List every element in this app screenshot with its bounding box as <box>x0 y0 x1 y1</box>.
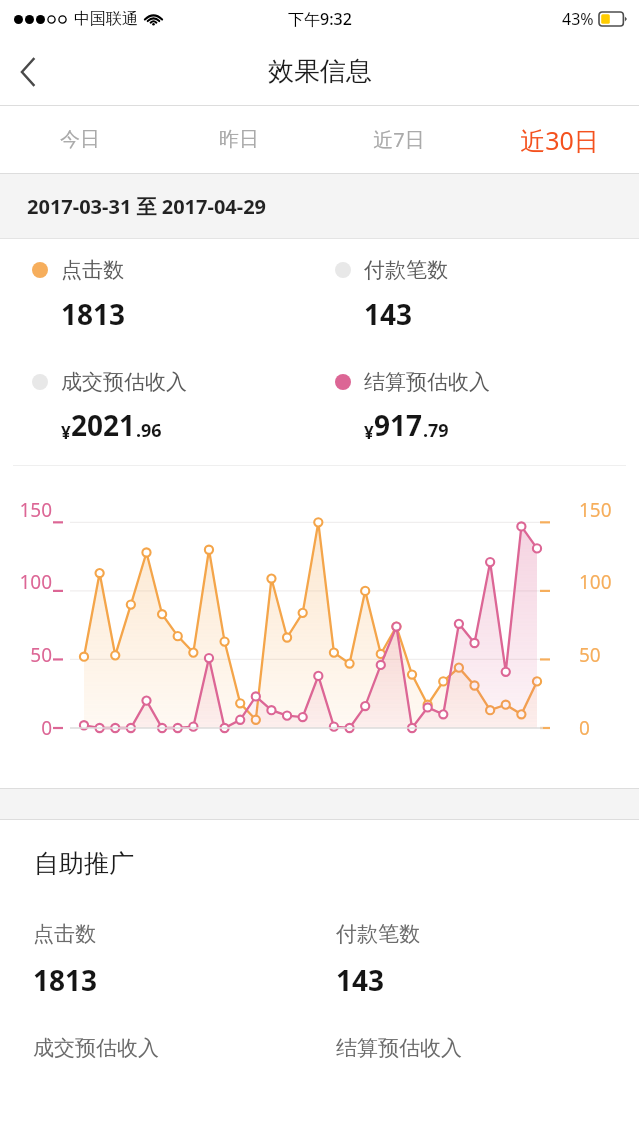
staticText: 中国联通 <box>74 9 138 29</box>
button[interactable]: 昨日 <box>159 106 319 173</box>
staticText: 917 <box>374 406 423 444</box>
staticText: 点击数 <box>61 257 124 283</box>
staticText: 143 <box>336 961 385 999</box>
staticText: 150 <box>579 497 612 523</box>
staticText: 昨日 <box>219 127 259 152</box>
staticText: 下午9:32 <box>288 8 352 30</box>
button[interactable]: 今日 <box>0 106 159 173</box>
button[interactable]: 近30日 <box>479 106 639 173</box>
staticText: 付款笔数 <box>364 257 448 283</box>
staticText: 成交预估收入 <box>61 369 187 395</box>
staticText: 近30日 <box>520 123 599 157</box>
staticText: 0 <box>579 715 590 741</box>
button[interactable]: 近7日 <box>319 106 479 173</box>
staticText: 2021 <box>71 406 136 444</box>
staticText: 50 <box>14 642 52 668</box>
staticText: 50 <box>579 642 601 668</box>
staticText: 1813 <box>61 295 126 333</box>
staticText: 效果信息 <box>268 55 372 88</box>
staticText: 100 <box>14 569 52 595</box>
staticText: 付款笔数 <box>336 921 420 947</box>
staticText: 今日 <box>60 127 100 152</box>
button[interactable]: Back <box>0 44 56 100</box>
staticText: .96 <box>136 418 162 443</box>
staticText: ¥ <box>61 421 71 444</box>
staticText: 100 <box>579 569 612 595</box>
staticText: 143 <box>364 295 413 333</box>
staticText: ¥ <box>364 421 374 444</box>
staticText: 自助推广 <box>34 848 134 879</box>
staticText: 结算预估收入 <box>364 369 490 395</box>
staticText: 0 <box>14 715 52 741</box>
staticText: 点击数 <box>33 921 96 947</box>
staticText: 成交预估收入 <box>33 1035 159 1061</box>
staticText: 结算预估收入 <box>336 1035 462 1061</box>
staticText: 150 <box>14 497 52 523</box>
staticText: 43% <box>562 8 594 30</box>
staticText: 1813 <box>33 961 98 999</box>
staticText: 近7日 <box>373 126 425 153</box>
staticText: 2017-03-31 至 2017-04-29 <box>27 193 267 220</box>
staticText: .79 <box>423 418 449 443</box>
